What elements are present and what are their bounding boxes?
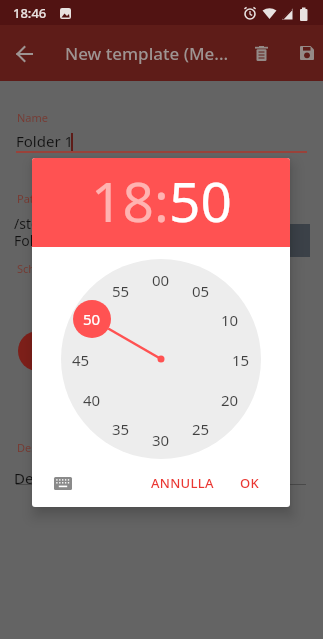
staticText: 40 (83, 390, 101, 408)
staticText: Description (14, 468, 95, 488)
staticText: OK (240, 474, 260, 492)
staticText: 50 (83, 309, 101, 329)
staticText: 18:46 (13, 4, 47, 22)
button[interactable] (9, 38, 41, 70)
staticText: /storage/emulated/0/ (14, 214, 156, 233)
button[interactable]: 45 (66, 350, 96, 368)
button[interactable]: OK (228, 467, 272, 499)
staticText: New template (Me... (65, 42, 229, 65)
button[interactable] (46, 470, 80, 496)
staticText: Description (17, 440, 77, 455)
button[interactable]: ANNULLA (144, 467, 220, 499)
staticText: 20 (221, 390, 239, 408)
staticText: 25 (192, 419, 210, 437)
staticText: 00 (152, 270, 170, 288)
button[interactable]: 25 (186, 419, 216, 437)
button[interactable]: 35 (106, 419, 136, 437)
staticText: Name (17, 110, 49, 125)
button[interactable] (291, 37, 323, 69)
button[interactable]: 15 (226, 350, 256, 368)
staticText: 10 (221, 310, 239, 328)
button[interactable] (240, 224, 310, 257)
button[interactable]: 00 (146, 270, 176, 288)
staticText: 30 (152, 430, 170, 448)
staticText: Folder 1 (16, 131, 74, 151)
button[interactable] (245, 37, 277, 69)
staticText: 18: (91, 163, 169, 238)
staticText: ANNULLA (151, 474, 214, 492)
button[interactable] (18, 331, 58, 371)
staticText: 50 (169, 163, 232, 238)
button[interactable]: 30 (146, 430, 176, 448)
button[interactable]: 20 (215, 390, 245, 408)
staticText: 05 (192, 281, 210, 299)
button[interactable]: 40 (77, 390, 107, 408)
staticText: 45 (72, 350, 90, 368)
staticText: 55 (112, 281, 130, 299)
staticText: 35 (112, 419, 130, 437)
staticText: Folder 1 (14, 231, 68, 250)
staticText: Schedule (17, 261, 64, 276)
staticText: 15 (232, 350, 250, 368)
button[interactable]: 55 (106, 281, 136, 299)
staticText: Path (17, 191, 41, 206)
button[interactable]: 05 (186, 281, 216, 299)
button[interactable]: 50 (73, 300, 111, 338)
button[interactable]: 10 (215, 310, 245, 328)
